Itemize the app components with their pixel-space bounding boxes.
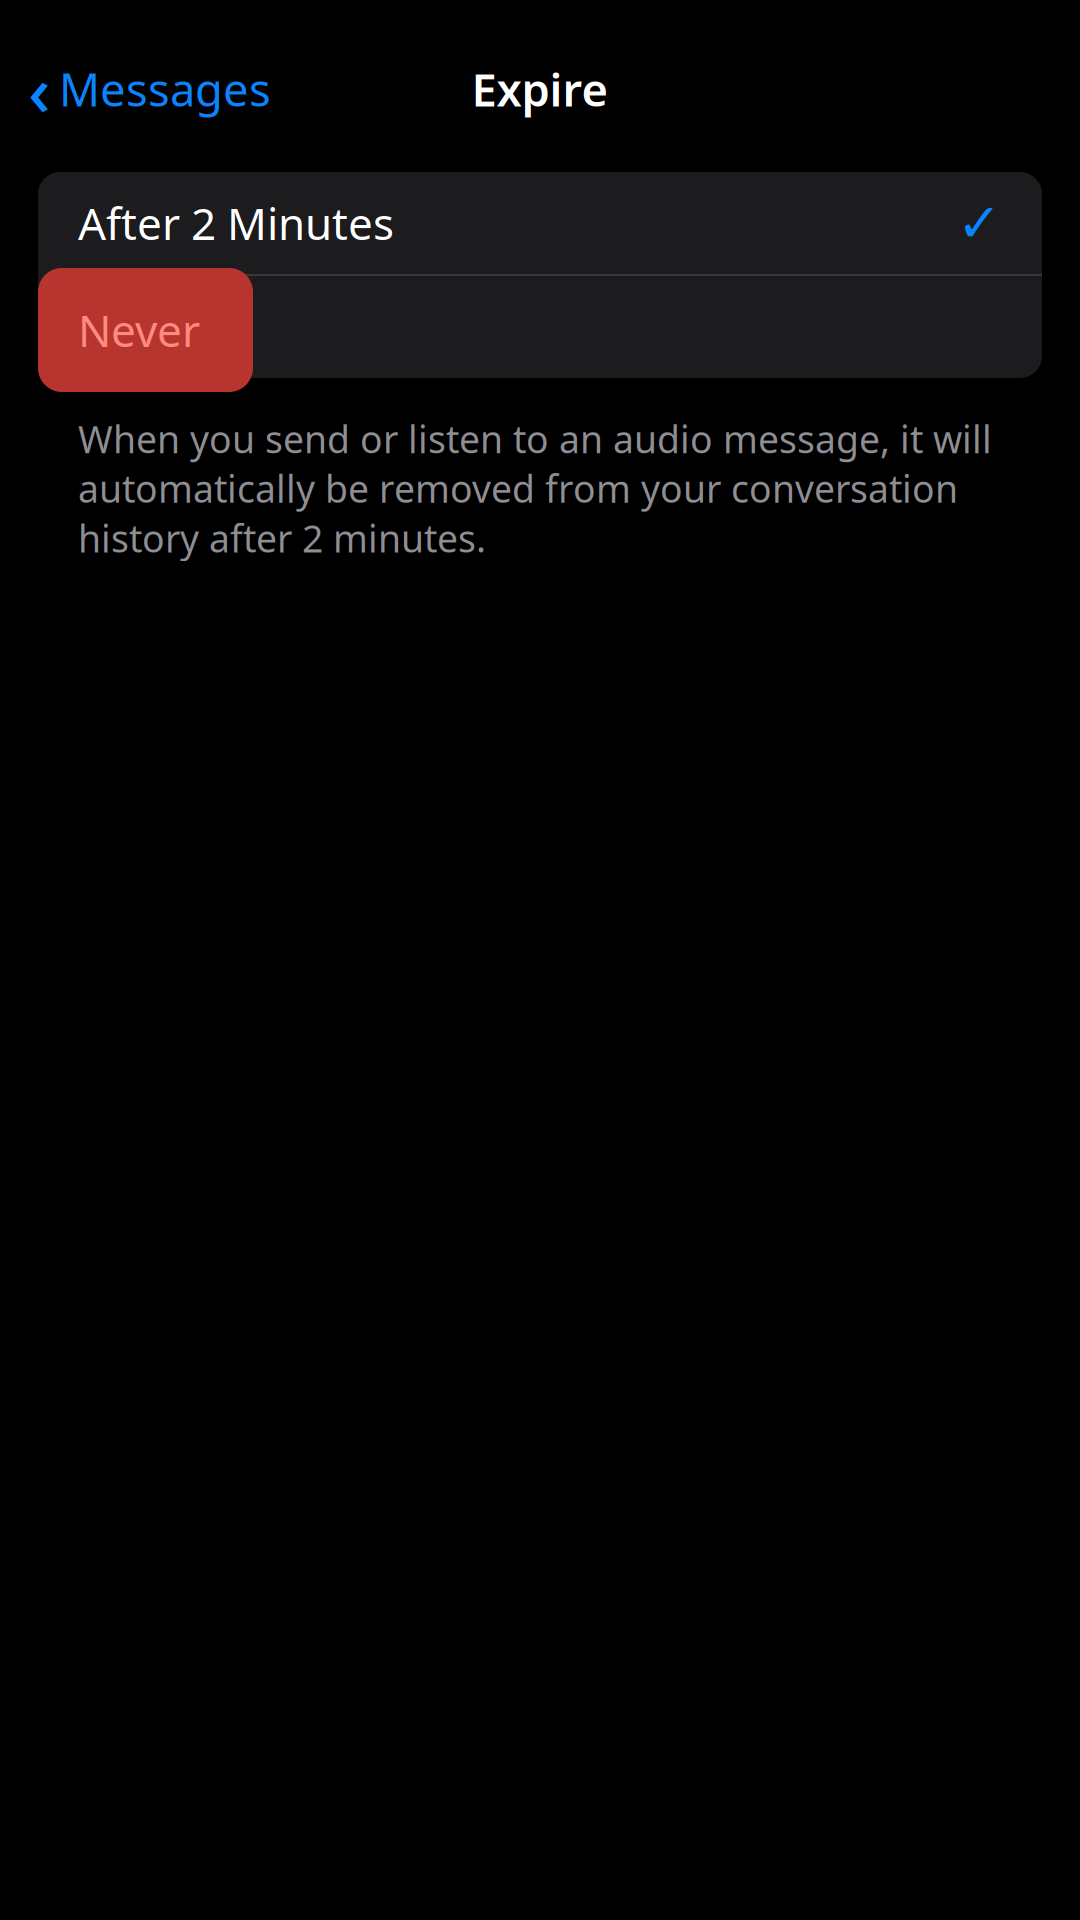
button[interactable]: Never [38, 276, 1042, 378]
staticText: ✓ [957, 193, 1002, 253]
button[interactable]: ‹ [8, 33, 291, 145]
staticText: When you send or listen to an audio mess… [78, 414, 992, 563]
button[interactable]: After 2 Minutes [38, 172, 1042, 274]
staticText: Never [78, 298, 200, 356]
button[interactable]: Never [38, 268, 253, 392]
staticText: Never [78, 301, 200, 359]
staticText: ‹ [28, 43, 51, 135]
staticText: After 2 Minutes [78, 194, 394, 252]
staticText: Expire [471, 59, 608, 119]
staticText: Messages [59, 59, 271, 119]
